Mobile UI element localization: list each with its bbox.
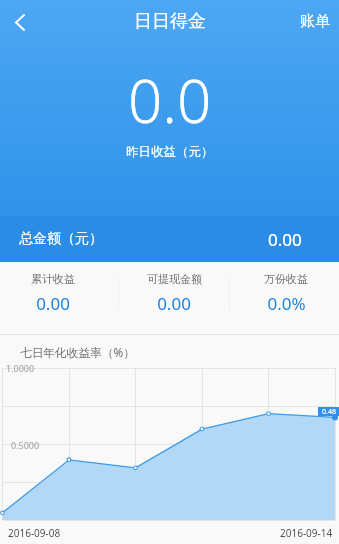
- button[interactable]: 总金额（元）: [0, 216, 339, 262]
- staticText: 总金额（元）: [19, 230, 103, 248]
- staticText: 七日年化收益率（%）: [20, 344, 135, 360]
- staticText: 0.00: [157, 292, 191, 315]
- button[interactable]: 万份收益: [233, 258, 339, 329]
- staticText: 可提现金额: [147, 272, 202, 286]
- staticText: 2016-09-14: [280, 526, 333, 540]
- staticText: 日日得金: [134, 10, 206, 33]
- staticText: 0.00: [36, 292, 70, 315]
- staticText: 0.0: [128, 59, 212, 141]
- staticText: 2016-09-08: [8, 526, 61, 540]
- staticText: 昨日收益（元）: [126, 144, 214, 160]
- staticText: 0.0%: [267, 292, 306, 315]
- button[interactable]: Back: [0, 1, 42, 43]
- button[interactable]: 累计收益: [0, 258, 106, 329]
- staticText: 0.48: [322, 407, 336, 416]
- staticText: 1.0000: [6, 362, 35, 374]
- staticText: 0.00: [268, 228, 302, 251]
- staticText: 账单: [300, 12, 330, 31]
- staticText: 万份收益: [264, 272, 308, 286]
- button[interactable]: 可提现金额: [121, 258, 227, 329]
- staticText: 累计收益: [31, 272, 75, 286]
- staticText: 0.5000: [11, 439, 40, 451]
- button[interactable]: 账单: [288, 2, 339, 41]
